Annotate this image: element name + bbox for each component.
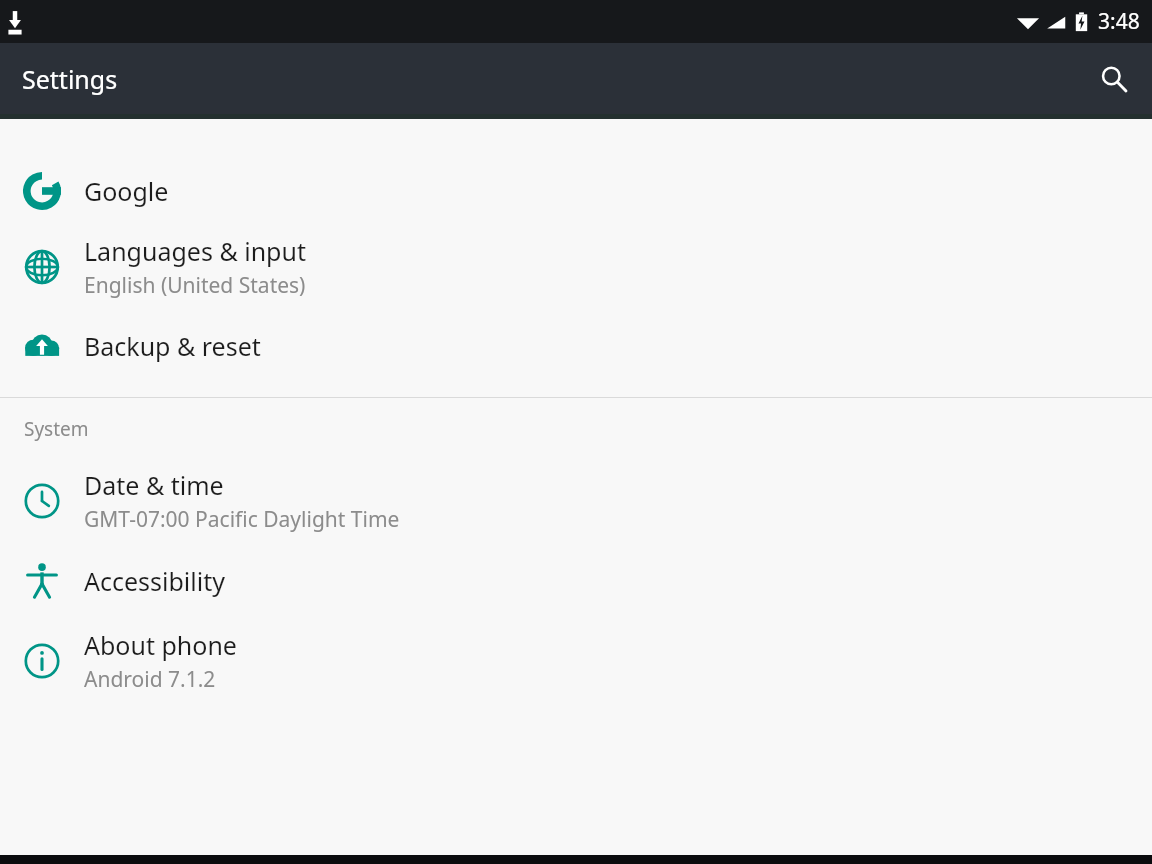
staticText: GMT-07:00 Pacific Daylight Time bbox=[84, 505, 400, 534]
button[interactable]: Google bbox=[0, 155, 1152, 227]
staticText: Android 7.1.2 bbox=[84, 665, 216, 694]
staticText: System bbox=[24, 416, 89, 442]
button[interactable]: Search bbox=[1090, 55, 1138, 103]
staticText: Settings bbox=[22, 62, 118, 96]
staticText: Languages & input bbox=[84, 234, 306, 268]
staticText: About phone bbox=[84, 628, 237, 662]
button[interactable]: About phone bbox=[0, 620, 1152, 702]
staticText: Date & time bbox=[84, 468, 224, 502]
button[interactable]: Accessibility bbox=[0, 542, 1152, 620]
button[interactable]: Date & time bbox=[0, 460, 1152, 542]
button[interactable]: Languages & input bbox=[0, 227, 1152, 307]
staticText: Accessibility bbox=[84, 564, 225, 598]
staticText: 3:48 bbox=[1098, 7, 1140, 36]
staticText: Backup & reset bbox=[84, 329, 261, 363]
button[interactable]: Backup & reset bbox=[0, 307, 1152, 385]
staticText: English (United States) bbox=[84, 271, 306, 300]
staticText: Google bbox=[84, 174, 169, 208]
